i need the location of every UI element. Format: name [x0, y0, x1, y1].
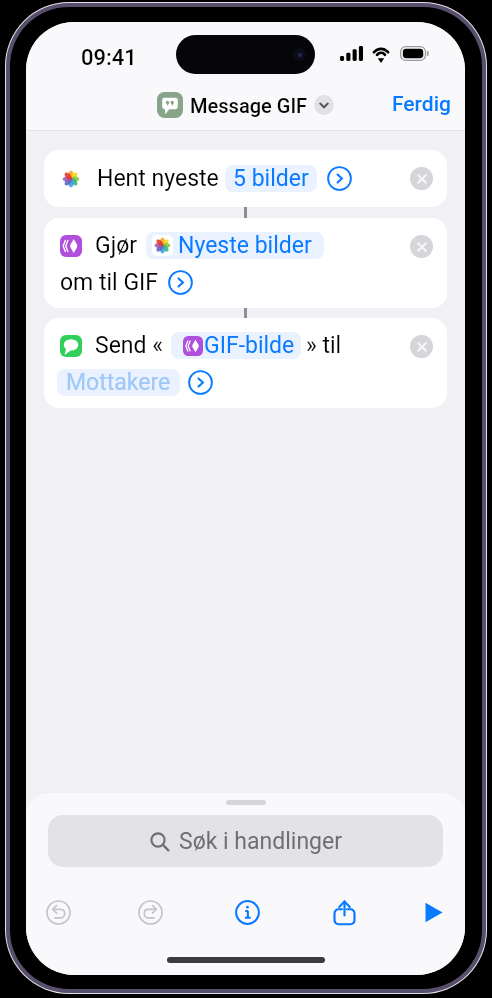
staticText: Gjør	[95, 232, 138, 259]
staticText: Hent nyeste	[97, 165, 219, 192]
button[interactable]: Send «	[44, 318, 447, 408]
staticText: om til GIF	[60, 269, 159, 296]
button[interactable]: Delete action	[410, 335, 433, 358]
staticText: Mottakere	[66, 369, 171, 396]
staticText: Message GIF	[190, 94, 308, 117]
staticText: Søk i handlinger	[179, 828, 342, 855]
staticText: 5 bilder	[233, 165, 309, 192]
button[interactable]: Hent nyeste	[44, 150, 447, 207]
staticText: 09:41	[81, 45, 137, 71]
staticText: » til	[306, 332, 342, 359]
button[interactable]: Undo	[36, 890, 80, 934]
staticText: GIF-bilde	[204, 332, 295, 359]
staticText: Send «	[95, 332, 164, 359]
button[interactable]: Configure	[327, 166, 352, 191]
staticText: Nyeste bilder	[178, 232, 312, 259]
button[interactable]: Share	[322, 890, 366, 934]
button[interactable]: Gjør	[44, 218, 447, 308]
button[interactable]: Details	[225, 890, 269, 934]
button[interactable]: Configure	[168, 270, 193, 295]
button[interactable]: Run shortcut	[410, 890, 454, 934]
button[interactable]: Shortcut options	[314, 95, 334, 115]
button[interactable]: Ferdig	[378, 86, 465, 123]
button[interactable]: Configure	[188, 370, 213, 395]
button[interactable]: Redo	[128, 890, 172, 934]
button[interactable]: Delete action	[410, 235, 433, 258]
staticText: Ferdig	[392, 92, 451, 117]
button[interactable]: Søk i handlinger	[48, 815, 443, 867]
button[interactable]: Delete action	[410, 167, 433, 190]
